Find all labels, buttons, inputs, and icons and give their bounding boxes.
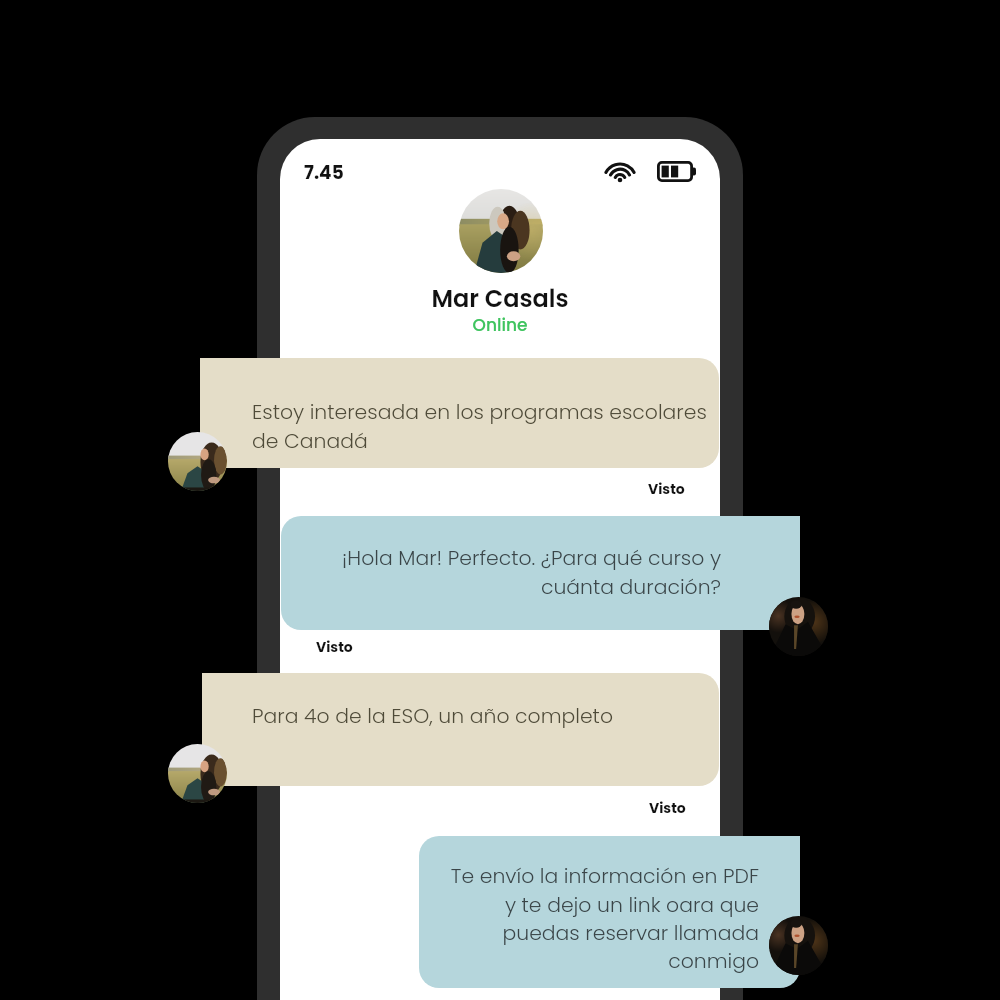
button[interactable]: Mar Casals avatar [168,744,227,803]
button[interactable]: Your avatar [769,916,828,975]
button[interactable]: Visto [649,798,686,818]
button[interactable]: Para 4o de la ESO, un año completo [202,673,719,786]
other: Battery level [657,161,699,182]
staticText: Estoy interesada en los programas escola… [252,398,713,455]
button[interactable]: Online [280,313,720,337]
button[interactable]: Visto [316,637,353,657]
button[interactable]: 7.45 [304,160,344,186]
staticText: Te envío la información en PDF y te dejo… [433,862,759,975]
other: Wi-Fi signal [605,160,635,182]
button[interactable] [459,189,543,273]
button[interactable]: Mar Casals avatar [168,432,227,491]
button[interactable]: Visto [648,479,685,499]
button[interactable]: Te envío la información en PDF y te dejo… [419,836,800,988]
button[interactable]: Mar Casals [280,282,720,316]
button[interactable]: Your avatar [769,597,828,656]
button[interactable]: Estoy interesada en los programas escola… [200,358,719,468]
button[interactable]: ¡Hola Mar! Perfecto. ¿Para qué curso y c… [281,516,800,630]
staticText: ¡Hola Mar! Perfecto. ¿Para qué curso y c… [301,544,721,601]
staticText: Para 4o de la ESO, un año completo [252,702,713,731]
